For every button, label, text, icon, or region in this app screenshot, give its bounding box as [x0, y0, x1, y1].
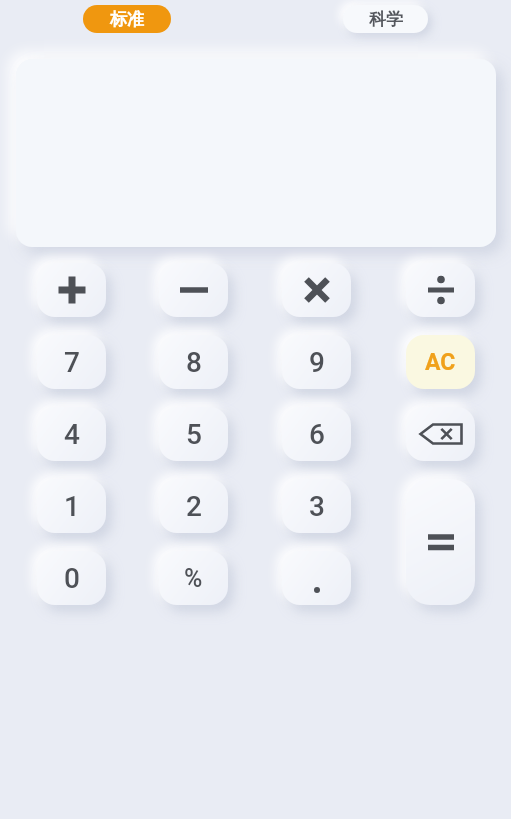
staticText: 8	[186, 346, 202, 379]
button[interactable]: 9	[282, 335, 351, 389]
button[interactable]	[406, 479, 475, 605]
button[interactable]: 5	[159, 407, 228, 461]
staticText: %	[184, 564, 203, 593]
staticText: 2	[186, 490, 202, 523]
staticText: 5	[186, 418, 202, 451]
staticText: AC	[425, 349, 456, 376]
button[interactable]	[282, 263, 351, 317]
button[interactable]: 6	[282, 407, 351, 461]
button[interactable]: 4	[37, 407, 106, 461]
button[interactable]: 7	[37, 335, 106, 389]
button[interactable]: 0	[37, 551, 106, 605]
button[interactable]: 2	[159, 479, 228, 533]
button[interactable]	[282, 551, 351, 605]
staticText: 标准	[110, 9, 144, 30]
button[interactable]	[406, 407, 475, 461]
staticText: 0	[64, 562, 80, 595]
button[interactable]: 8	[159, 335, 228, 389]
staticText: 6	[309, 418, 325, 451]
staticText: 3	[309, 490, 325, 523]
button[interactable]: 1	[37, 479, 106, 533]
button[interactable]	[37, 263, 106, 317]
staticText: 9	[309, 346, 325, 379]
button[interactable]: 标准	[83, 5, 171, 33]
button[interactable]: AC	[406, 335, 475, 389]
button[interactable]	[159, 263, 228, 317]
button[interactable]	[406, 263, 475, 317]
staticText: 科学	[369, 9, 403, 30]
button[interactable]: 3	[282, 479, 351, 533]
staticText: 7	[64, 346, 80, 379]
button[interactable]: 科学	[343, 5, 428, 33]
staticText: 1	[64, 490, 80, 523]
staticText: 4	[64, 418, 80, 451]
button[interactable]: %	[159, 551, 228, 605]
